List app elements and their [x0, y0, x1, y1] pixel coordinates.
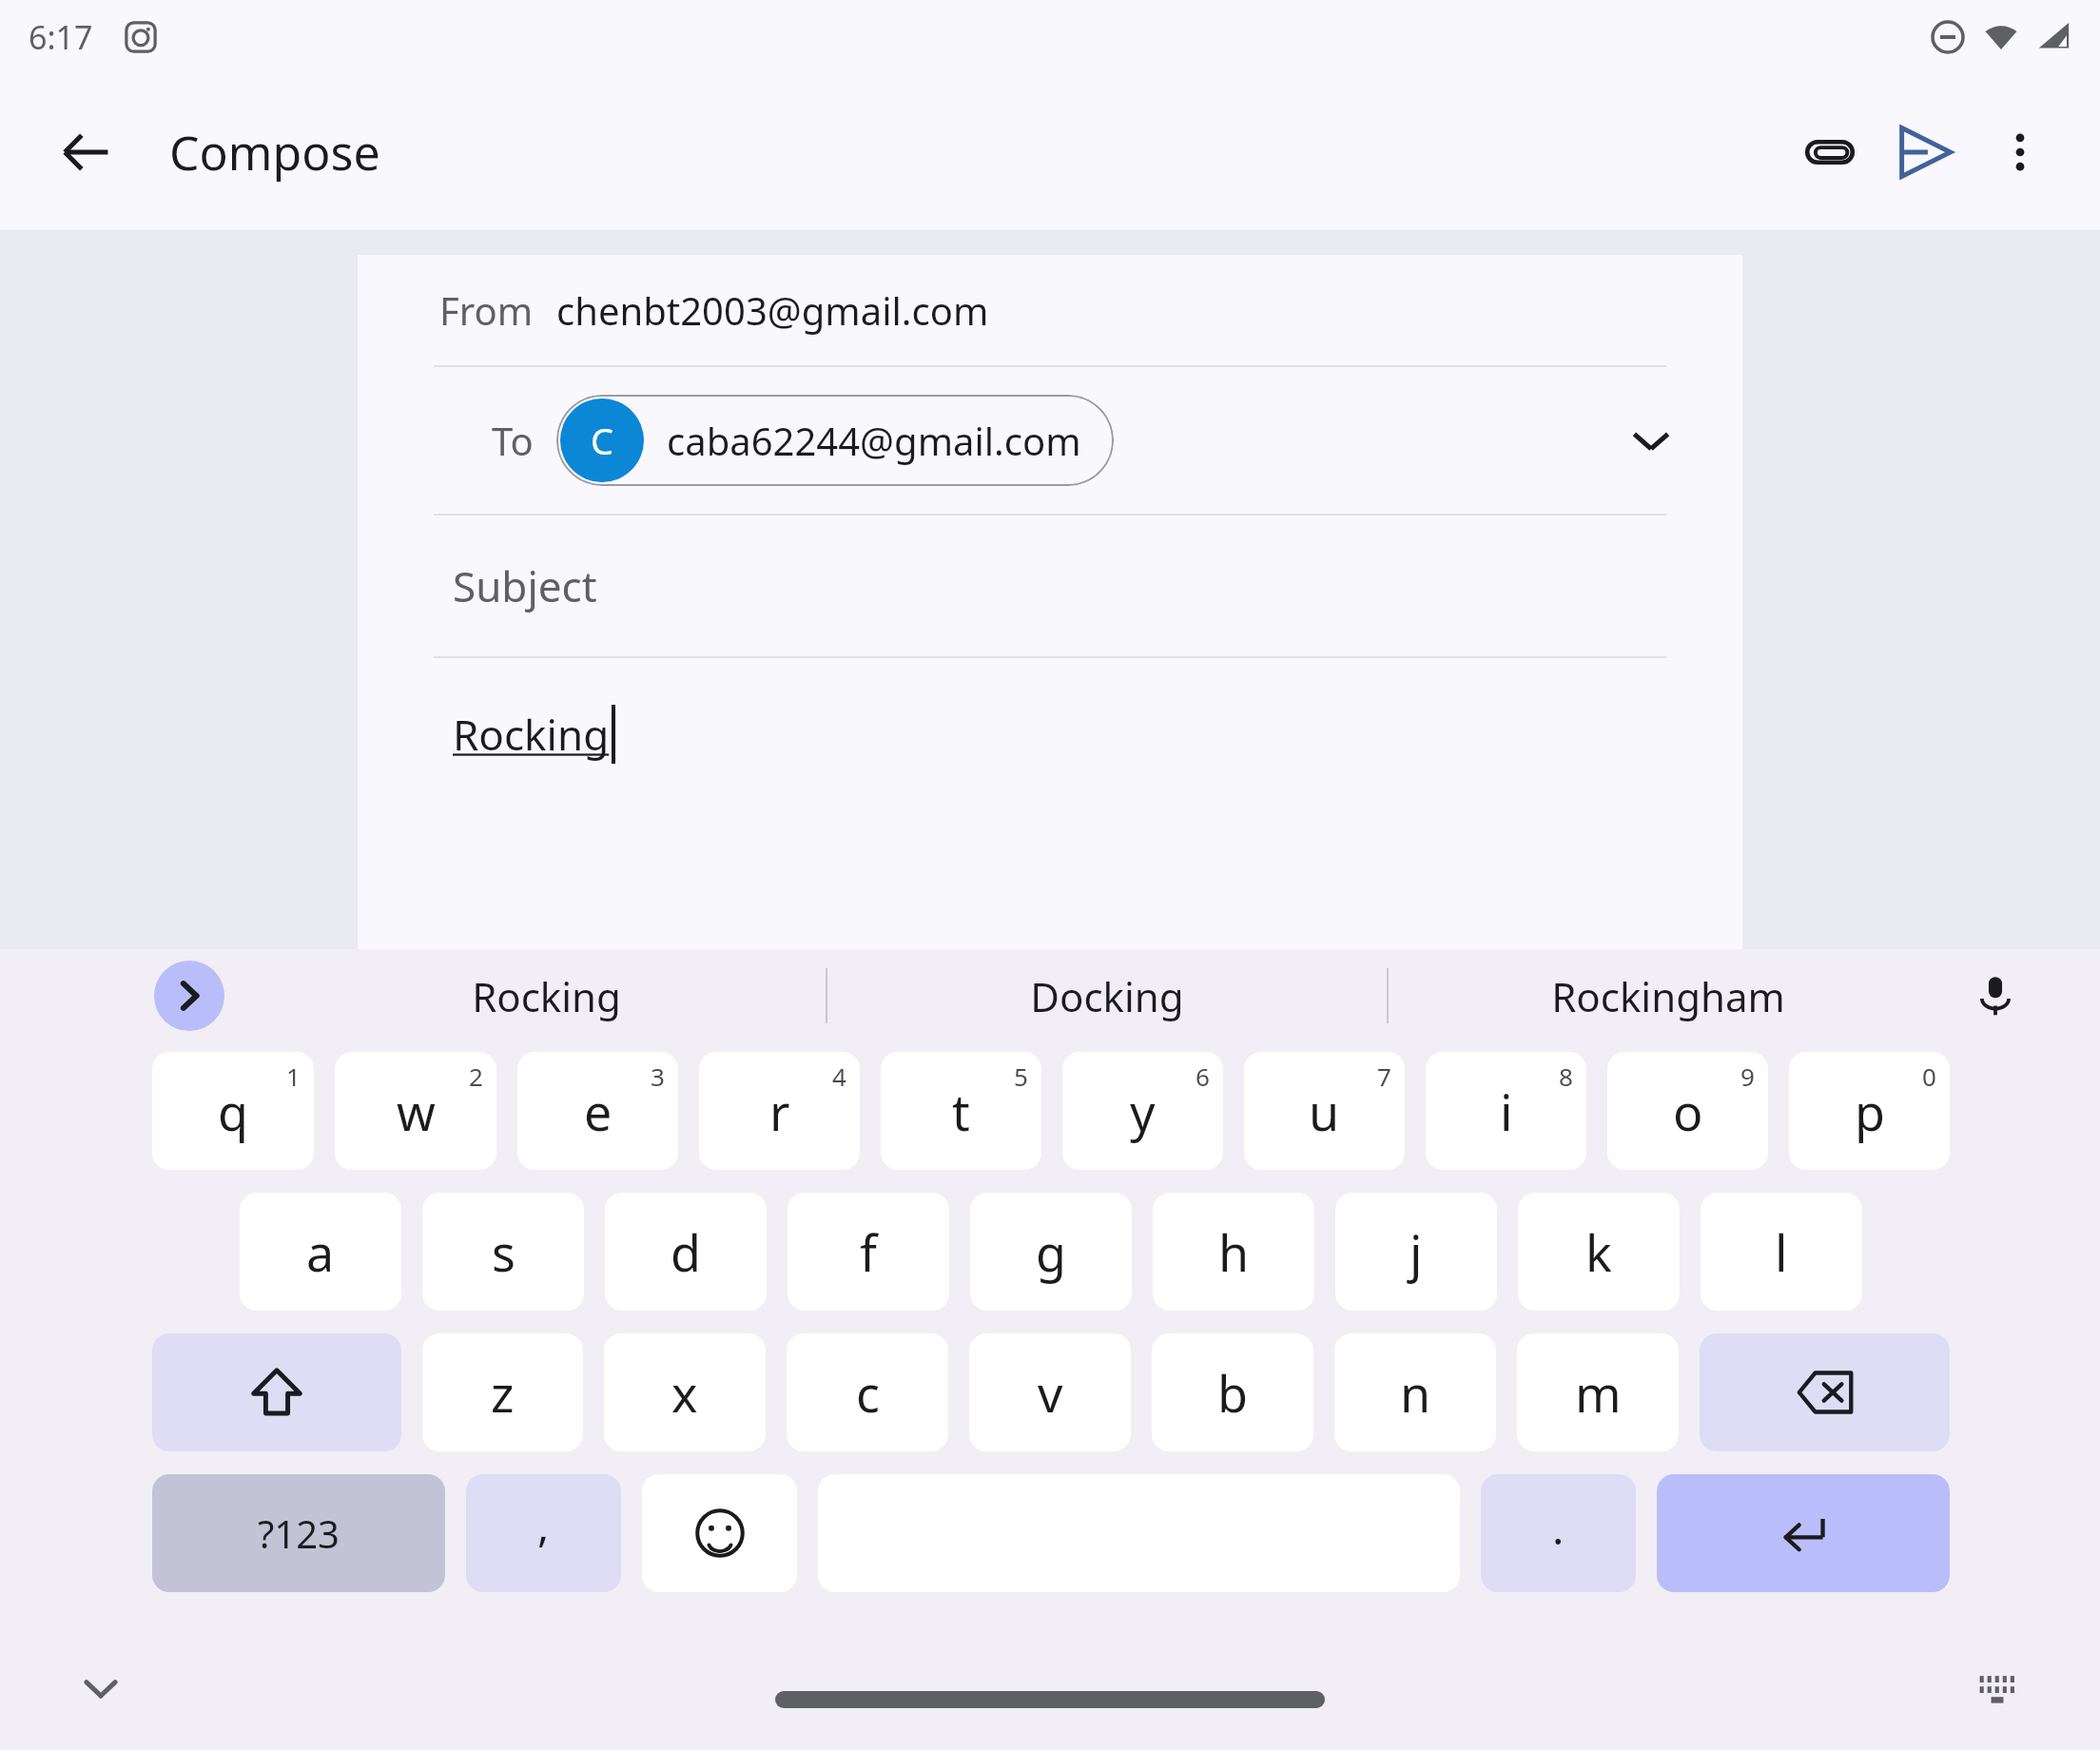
staticText: p	[1855, 1078, 1885, 1145]
button[interactable]: Expand recipients	[1605, 395, 1697, 486]
staticText: z	[491, 1359, 515, 1427]
button[interactable]: q	[152, 1052, 314, 1170]
button[interactable]: a	[240, 1193, 401, 1311]
staticText: Compose	[169, 120, 380, 185]
button[interactable]: z	[422, 1333, 583, 1451]
button[interactable]: Backspace	[1700, 1333, 1950, 1451]
button[interactable]: Rocking	[358, 658, 1742, 810]
button[interactable]: n	[1334, 1333, 1496, 1451]
staticText: q	[218, 1078, 248, 1145]
button[interactable]: c	[787, 1333, 948, 1451]
button[interactable]: Home	[775, 1691, 1325, 1708]
staticText: 8	[1559, 1060, 1573, 1093]
staticText: 1	[286, 1060, 301, 1093]
button[interactable]: r	[699, 1052, 860, 1170]
staticText: b	[1217, 1359, 1248, 1427]
staticText: 6:17	[29, 15, 93, 59]
button[interactable]: u	[1244, 1052, 1405, 1170]
staticText: 7	[1377, 1060, 1391, 1093]
staticText: f	[860, 1218, 877, 1286]
staticText: w	[397, 1078, 436, 1145]
button[interactable]: t	[881, 1052, 1041, 1170]
button[interactable]: Shift	[152, 1333, 401, 1451]
button[interactable]: Docking	[827, 949, 1387, 1042]
staticText: 5	[1014, 1060, 1028, 1093]
button[interactable]: More suggestions	[154, 961, 224, 1031]
staticText: t	[952, 1078, 970, 1145]
staticText: u	[1309, 1078, 1340, 1145]
staticText: i	[1500, 1078, 1513, 1145]
button[interactable]: k	[1518, 1193, 1680, 1311]
staticText: Subject	[453, 557, 597, 614]
button[interactable]: w	[335, 1052, 496, 1170]
staticText: chenbt2003@gmail.com	[556, 284, 989, 336]
button[interactable]: .	[1481, 1474, 1636, 1592]
staticText: o	[1673, 1078, 1703, 1145]
staticText: C	[591, 416, 614, 465]
button[interactable]: More options	[1974, 107, 2066, 198]
button[interactable]: Voice input	[1957, 958, 2033, 1034]
button[interactable]: i	[1426, 1052, 1586, 1170]
button[interactable]: v	[969, 1333, 1131, 1451]
staticText: Rocking	[472, 969, 621, 1023]
button[interactable]: Hide keyboard	[67, 1654, 135, 1722]
button[interactable]: p	[1789, 1052, 1950, 1170]
button[interactable]: Change keyboard	[1963, 1654, 2032, 1722]
staticText: caba62244@gmail.com	[667, 415, 1081, 466]
button[interactable]: Attach file	[1784, 107, 1876, 198]
button[interactable]: j	[1335, 1193, 1497, 1311]
button[interactable]: From	[358, 255, 1742, 365]
button[interactable]: ,	[466, 1474, 621, 1592]
staticText: y	[1130, 1078, 1156, 1145]
button[interactable]: To	[358, 367, 1742, 514]
staticText: c	[856, 1359, 880, 1427]
staticText: From	[439, 284, 534, 336]
staticText: r	[769, 1078, 790, 1145]
staticText: Docking	[1030, 969, 1184, 1023]
staticText: d	[671, 1218, 701, 1286]
button[interactable]: Send	[1879, 107, 1971, 198]
button[interactable]: y	[1062, 1052, 1223, 1170]
button[interactable]: C	[556, 395, 1114, 486]
button[interactable]: s	[422, 1193, 584, 1311]
staticText: 2	[469, 1060, 483, 1093]
button[interactable]: x	[604, 1333, 766, 1451]
button[interactable]: d	[605, 1193, 767, 1311]
staticText: m	[1575, 1359, 1622, 1427]
staticText: .	[1552, 1498, 1565, 1558]
button[interactable]: Subject	[358, 515, 1742, 656]
button[interactable]: b	[1152, 1333, 1313, 1451]
button[interactable]: Rockingham	[1389, 949, 1948, 1042]
staticText: l	[1775, 1218, 1788, 1286]
staticText: h	[1218, 1218, 1250, 1286]
button[interactable]: f	[787, 1193, 949, 1311]
staticText: 4	[832, 1060, 846, 1093]
staticText: v	[1038, 1359, 1063, 1427]
staticText: Rockingham	[1551, 969, 1785, 1023]
staticText: j	[1410, 1218, 1423, 1286]
staticText: 0	[1922, 1060, 1936, 1093]
button[interactable]: h	[1153, 1193, 1314, 1311]
button[interactable]: Emoji	[642, 1474, 797, 1592]
staticText: n	[1400, 1359, 1431, 1427]
button[interactable]: m	[1517, 1333, 1679, 1451]
staticText: e	[584, 1078, 612, 1145]
staticText: To	[492, 415, 534, 466]
staticText: g	[1036, 1218, 1066, 1286]
button[interactable]: l	[1701, 1193, 1862, 1311]
staticText: a	[306, 1218, 335, 1286]
button[interactable]: g	[970, 1193, 1132, 1311]
button[interactable]: Rocking	[266, 949, 826, 1042]
button[interactable]: o	[1607, 1052, 1768, 1170]
staticText: k	[1585, 1218, 1612, 1286]
staticText: ?123	[258, 1507, 340, 1559]
staticText: 3	[651, 1060, 665, 1093]
staticText: s	[492, 1218, 515, 1286]
button[interactable]: Enter	[1657, 1474, 1950, 1592]
staticText: 9	[1740, 1060, 1755, 1093]
button[interactable]: ?123	[152, 1474, 445, 1592]
button[interactable]: e	[517, 1052, 678, 1170]
button[interactable]: Back	[48, 114, 124, 190]
staticText: x	[671, 1359, 698, 1427]
